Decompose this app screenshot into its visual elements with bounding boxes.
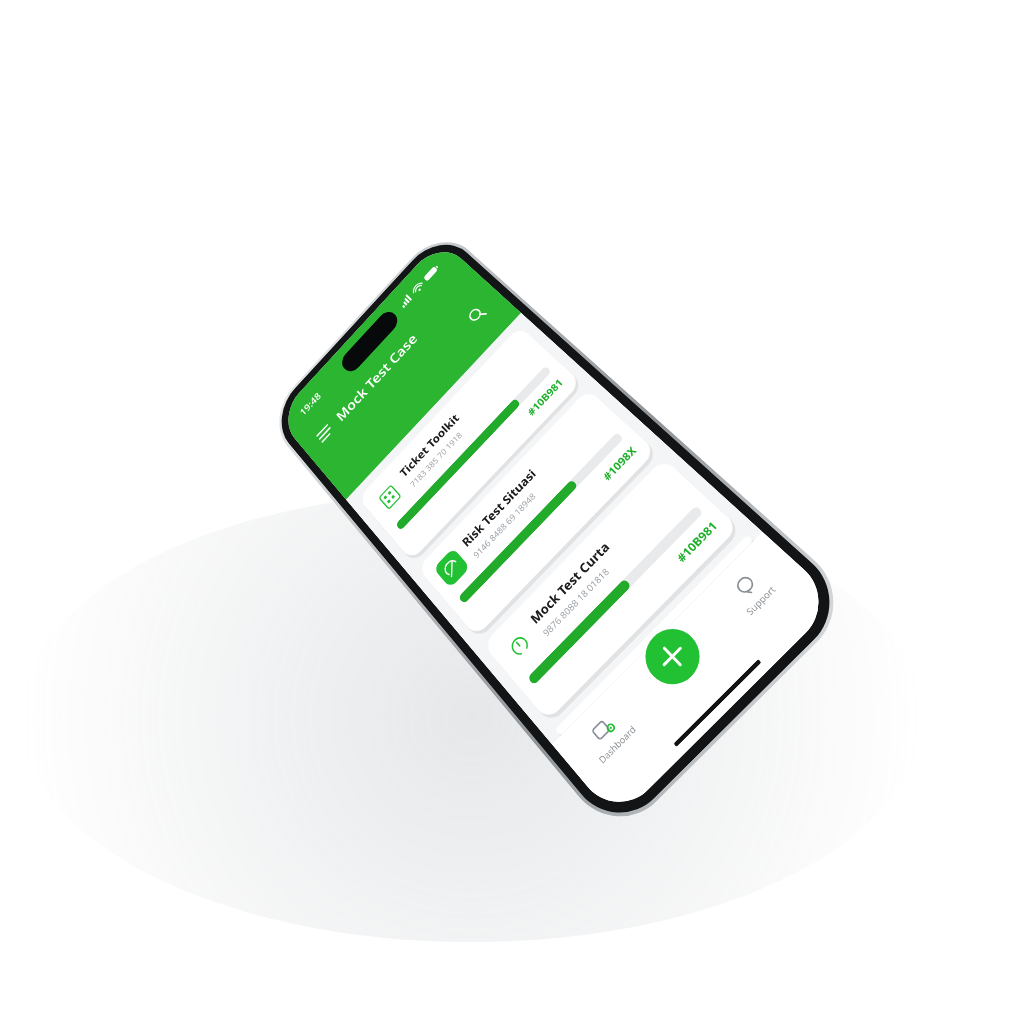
button[interactable]: Ticket Toolkit [358, 326, 581, 561]
staticText: Ticket Toolkit [397, 410, 462, 480]
staticText: Support [743, 583, 778, 618]
button[interactable]: Support [700, 540, 805, 644]
staticText: #10B981 [673, 518, 721, 565]
button[interactable]: Open menu [311, 419, 337, 448]
button[interactable]: Mock Test Curta [483, 458, 739, 721]
button[interactable]: Risk Test Situasi [417, 389, 656, 637]
staticText: 9146 8488 69 18948 [471, 490, 538, 561]
staticText: 9876 8088 18 01818 [540, 565, 612, 639]
button[interactable]: Add new test [634, 618, 711, 696]
button[interactable]: Mocktest Somfak [555, 535, 754, 736]
staticText: Mock Test Curta [527, 538, 613, 627]
staticText: Mock Test Case [332, 330, 421, 425]
staticText: Risk Test Situasi [459, 466, 539, 550]
staticText: 7183 385 70 1918 [408, 430, 465, 490]
staticText: #10B981 [524, 376, 566, 418]
staticText: 19:48 [297, 389, 323, 418]
button[interactable]: Dashboard [560, 684, 659, 788]
staticText: Exam [663, 646, 690, 674]
staticText: #1098X [600, 443, 639, 483]
button[interactable]: Search [457, 296, 496, 334]
staticText: Dashboard [596, 723, 639, 766]
